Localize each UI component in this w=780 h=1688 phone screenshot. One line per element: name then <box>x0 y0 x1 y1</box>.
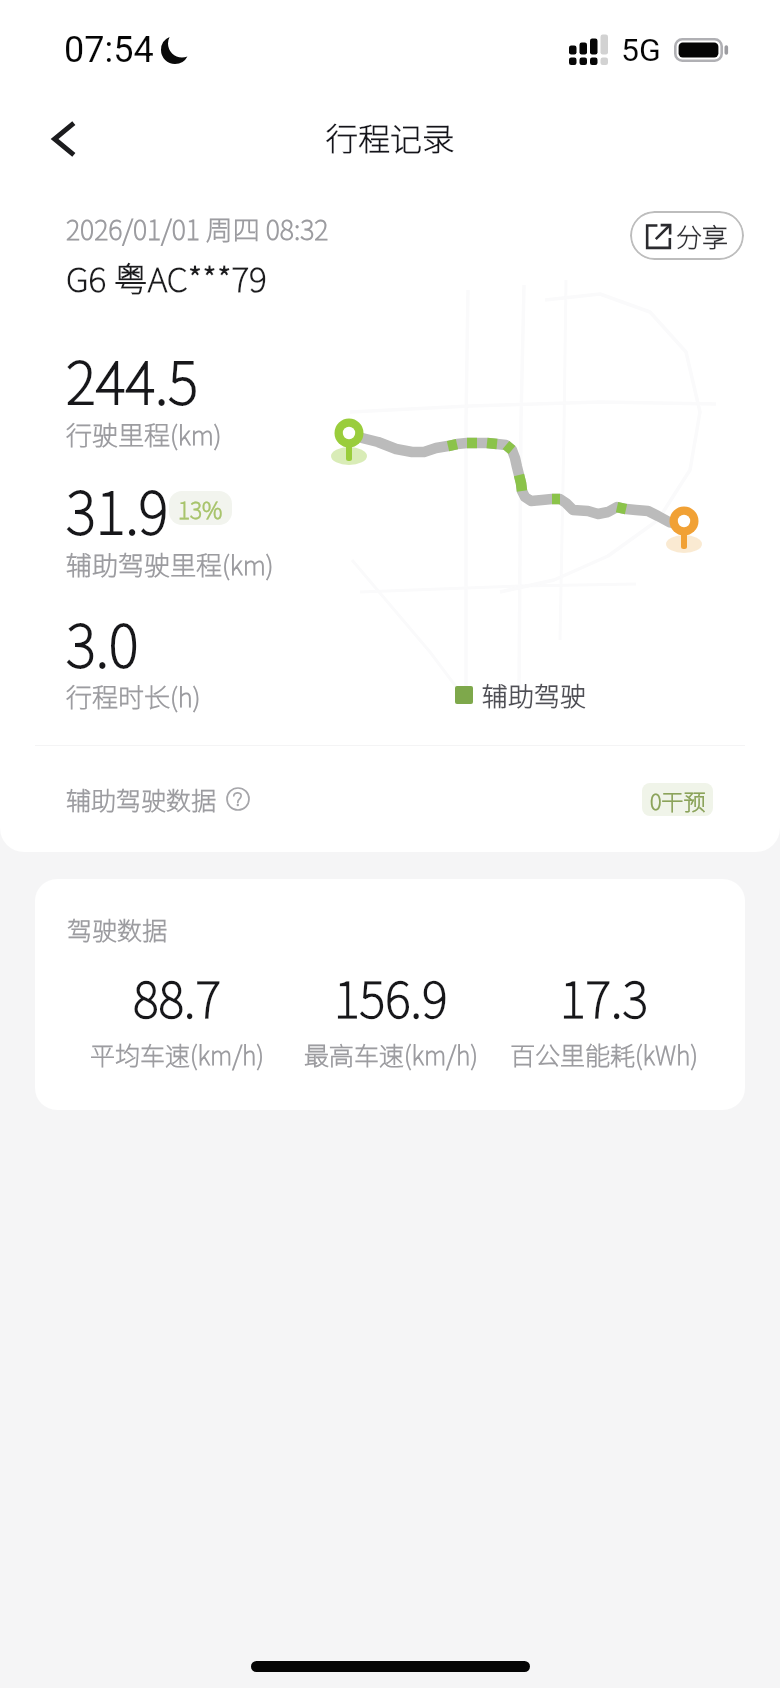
staticText: 行程时长(h) <box>66 677 201 715</box>
staticText: 17.3 <box>560 961 648 1032</box>
staticText: 驾驶数据 <box>67 911 168 947</box>
staticText: 最高车速(km/h) <box>304 1036 478 1072</box>
staticText: 行程记录 <box>326 114 455 160</box>
staticText: 156.9 <box>334 961 448 1032</box>
staticText: 5G <box>621 31 661 69</box>
staticText: 辅助驾驶 <box>482 676 587 714</box>
staticText: 辅助驾驶里程(km) <box>66 545 274 583</box>
staticText: 平均车速(km/h) <box>90 1036 264 1072</box>
staticText: 0干预 <box>650 784 706 816</box>
staticText: 辅助驾驶数据 <box>66 781 217 817</box>
staticText: 31.9 <box>66 468 169 551</box>
staticText: 3.0 <box>66 601 139 684</box>
staticText: 07:54 <box>64 29 154 71</box>
staticText: 百公里能耗(kWh) <box>510 1036 698 1072</box>
staticText: 行驶里程(km) <box>66 415 222 453</box>
staticText: 244.5 <box>66 338 198 421</box>
staticText: 13% <box>178 492 223 525</box>
staticText: 88.7 <box>133 961 221 1032</box>
button[interactable]: 辅助驾驶数据 <box>0 746 780 852</box>
staticText: G6 粤AC***79 <box>66 253 267 302</box>
staticText: 分享 <box>676 217 729 255</box>
button[interactable]: 分享 <box>630 211 744 260</box>
staticText: 2026/01/01 周四 08:32 <box>66 209 329 248</box>
button[interactable]: Back <box>32 109 92 169</box>
